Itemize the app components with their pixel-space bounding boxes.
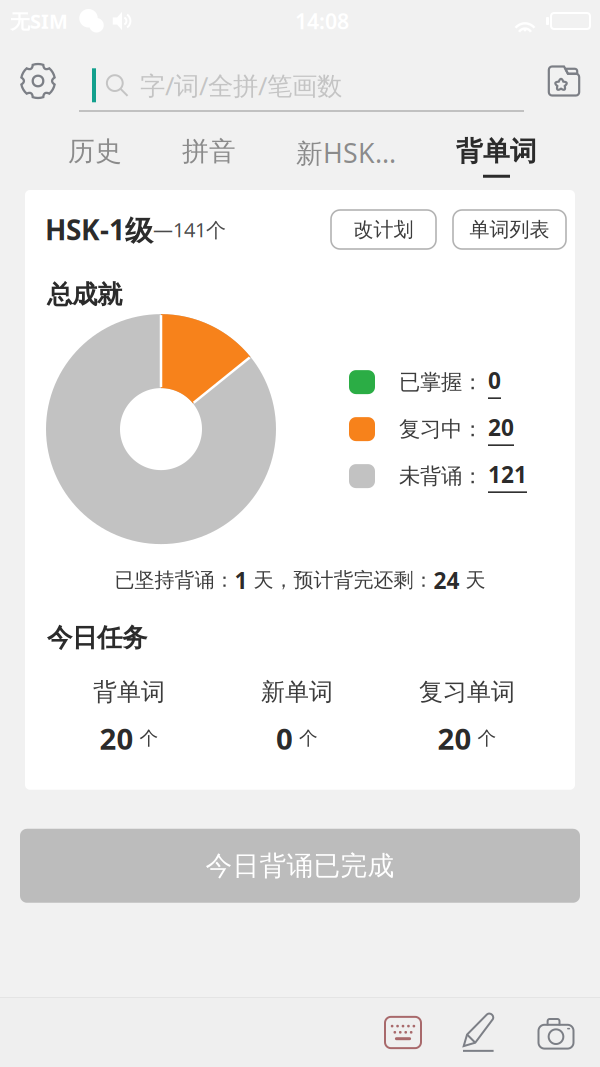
staticText: 未背诵 — [399, 463, 462, 489]
staticText: ： — [462, 369, 483, 395]
staticText: 复习单词 — [419, 677, 515, 707]
staticText: 背单词 — [456, 135, 537, 168]
staticText: 个 — [299, 727, 318, 750]
staticText: 20 — [437, 719, 471, 758]
button[interactable]: 改计划 — [331, 210, 436, 249]
staticText: 20 — [488, 412, 514, 442]
staticText: 个 — [139, 727, 158, 750]
staticText: 今日背诵已完成 — [205, 849, 394, 882]
staticText: ： — [462, 463, 483, 489]
button[interactable]: 单词列表 — [453, 210, 566, 249]
button[interactable]: 背单词 — [456, 120, 537, 190]
staticText: 20 — [99, 719, 133, 758]
staticText: 天，预计背完还剩： — [247, 568, 433, 592]
button[interactable]: Camera input — [528, 1004, 584, 1060]
staticText: 已掌握 — [399, 369, 462, 395]
button[interactable]: 新HSK... — [296, 120, 396, 190]
staticText: 新HSK... — [296, 135, 396, 170]
staticText: 无SIM — [10, 8, 68, 34]
staticText: 0 — [276, 719, 293, 758]
staticText: 新单词 — [261, 677, 333, 707]
button[interactable]: Settings — [9, 42, 67, 120]
staticText: 0 — [488, 365, 501, 395]
staticText: 总成就 — [47, 279, 122, 310]
button[interactable]: Keyboard input — [375, 1004, 431, 1060]
staticText: ： — [462, 416, 483, 442]
staticText: 已坚持背诵： — [114, 568, 234, 592]
staticText: 字/词/全拼/笔画数 — [140, 68, 342, 102]
staticText: 1 — [234, 565, 247, 595]
staticText: 今日任务 — [47, 622, 147, 653]
staticText: 复习中 — [399, 416, 462, 442]
button[interactable]: Favorites — [540, 42, 588, 120]
staticText: 拼音 — [182, 135, 236, 168]
staticText: 121 — [488, 459, 527, 489]
staticText: 14:08 — [295, 7, 349, 35]
staticText: 天 — [459, 568, 485, 592]
staticText: 24 — [433, 565, 459, 595]
staticText: 历史 — [68, 135, 122, 168]
staticText: 背单词 — [93, 677, 165, 707]
button[interactable]: 历史 — [68, 120, 122, 190]
staticText: HSK-1级 — [45, 211, 153, 248]
staticText: —141个 — [153, 216, 226, 243]
button[interactable]: 拼音 — [182, 120, 236, 190]
staticText: 单词列表 — [469, 217, 549, 242]
staticText: 改计划 — [353, 217, 413, 242]
button[interactable]: Handwriting input — [452, 1004, 508, 1060]
staticText: 个 — [477, 727, 496, 750]
button[interactable]: 今日背诵已完成 — [20, 829, 580, 903]
